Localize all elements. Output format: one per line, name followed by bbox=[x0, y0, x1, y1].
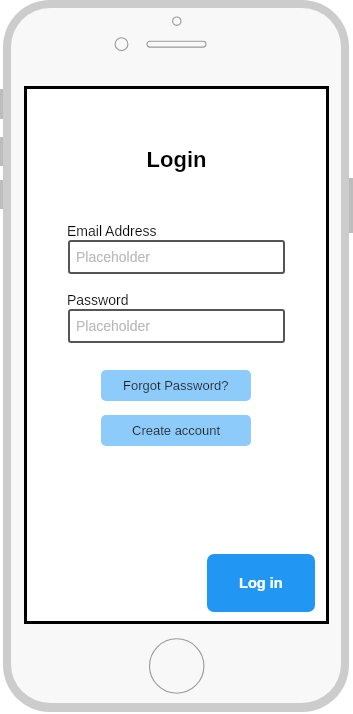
staticText: Placeholder bbox=[76, 249, 150, 265]
button[interactable]: Placeholder bbox=[68, 309, 285, 343]
button[interactable]: Forgot Password? bbox=[101, 370, 251, 401]
staticText: Forgot Password? bbox=[123, 378, 229, 393]
staticText: Password bbox=[67, 292, 129, 308]
staticText: Log in bbox=[239, 575, 283, 591]
button[interactable]: Log in bbox=[207, 554, 315, 612]
button[interactable]: Placeholder bbox=[68, 240, 285, 274]
staticText: Placeholder bbox=[76, 318, 150, 334]
button[interactable]: Create account bbox=[101, 415, 251, 446]
staticText: Login bbox=[24, 147, 329, 172]
staticText: Create account bbox=[132, 423, 221, 438]
staticText: Email Address bbox=[67, 223, 157, 239]
